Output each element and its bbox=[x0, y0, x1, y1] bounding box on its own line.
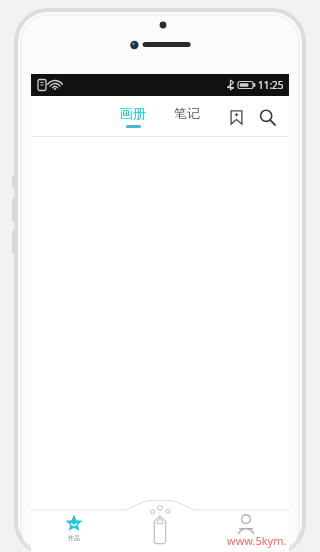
button[interactable]: Create bbox=[117, 500, 203, 552]
button[interactable]: 笔记 bbox=[164, 101, 210, 132]
staticText: 笔记 bbox=[174, 105, 200, 121]
button[interactable]: 画册 bbox=[110, 101, 156, 132]
staticText: 画册 bbox=[120, 105, 146, 121]
staticText: 作品 bbox=[68, 534, 80, 542]
button[interactable]: Search bbox=[251, 101, 283, 133]
staticText: 11:25 bbox=[258, 78, 284, 92]
button[interactable]: 作品 bbox=[31, 500, 117, 552]
button[interactable]: Profile bbox=[203, 500, 289, 552]
button[interactable]: Bookmark bbox=[221, 102, 251, 132]
staticText: www.5kym. bbox=[227, 533, 287, 548]
